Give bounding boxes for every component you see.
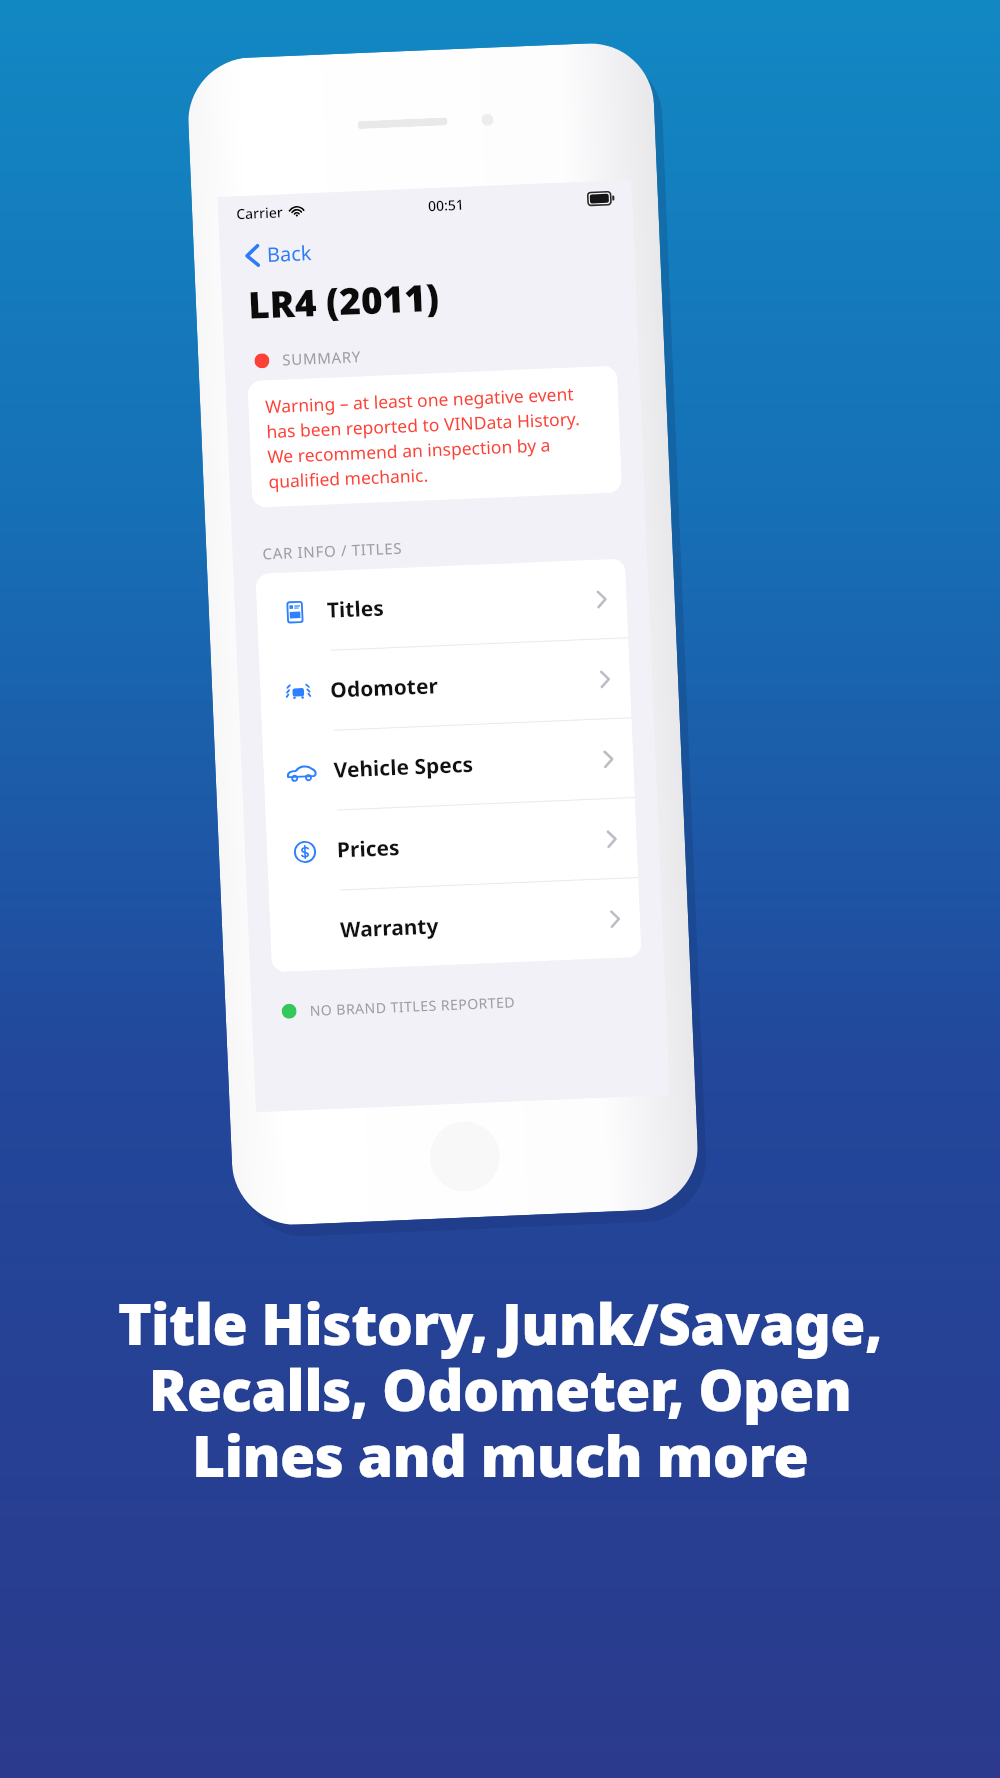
- staticText: LR4 (2011): [247, 271, 441, 329]
- staticText: Prices: [336, 833, 401, 865]
- staticText: Warning – at least one negative event ha…: [265, 380, 605, 493]
- staticText: Titles: [326, 593, 384, 625]
- button[interactable]: Titles: [255, 558, 628, 653]
- staticText: CAR INFO / TITLES: [262, 538, 403, 563]
- staticText: Warranty: [340, 911, 440, 944]
- staticText: NO BRAND TITLES REPORTED: [309, 992, 516, 1020]
- staticText: 00:51: [428, 195, 464, 215]
- staticText: Back: [266, 239, 312, 268]
- button[interactable]: Warranty: [269, 878, 642, 972]
- staticText: Vehicle Specs: [333, 750, 474, 785]
- button[interactable]: Odomoter: [259, 638, 632, 733]
- staticText: Odomoter: [330, 671, 439, 705]
- staticText: SUMMARY: [282, 346, 362, 369]
- button[interactable]: Back: [239, 233, 319, 275]
- button[interactable]: Vehicle Specs: [262, 718, 635, 813]
- staticText: Title History, Junk/Savage, Recalls, Odo…: [118, 1284, 882, 1494]
- staticText: Carrier: [236, 202, 284, 223]
- button[interactable]: Prices: [265, 798, 638, 892]
